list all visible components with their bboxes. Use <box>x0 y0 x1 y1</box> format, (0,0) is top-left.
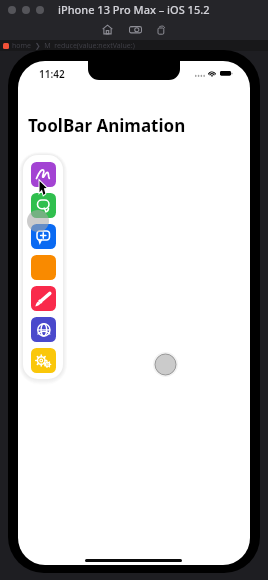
button[interactable]: Tool 1 <box>31 193 56 218</box>
staticText: 11:42 <box>39 67 65 81</box>
button[interactable]: Home <box>94 19 120 40</box>
button[interactable]: Tool 2 <box>31 224 56 249</box>
button[interactable]: Tool 3 <box>31 255 56 280</box>
button[interactable]: Tool 5 <box>31 317 56 342</box>
button[interactable]: Rotate <box>148 19 174 40</box>
button[interactable]: Tool 6 <box>31 348 56 373</box>
button[interactable]: Tool 0 <box>31 162 56 187</box>
staticText: home ❯ M reduce(value:nextValue:) <box>12 41 135 51</box>
button[interactable]: Screenshot <box>122 19 148 40</box>
button[interactable]: Tool 4 <box>31 286 56 311</box>
staticText: iPhone 13 Pro Max – iOS 15.2 <box>58 2 210 17</box>
staticText: ToolBar Animation <box>28 114 186 137</box>
button[interactable]: Drag handle <box>153 352 178 377</box>
